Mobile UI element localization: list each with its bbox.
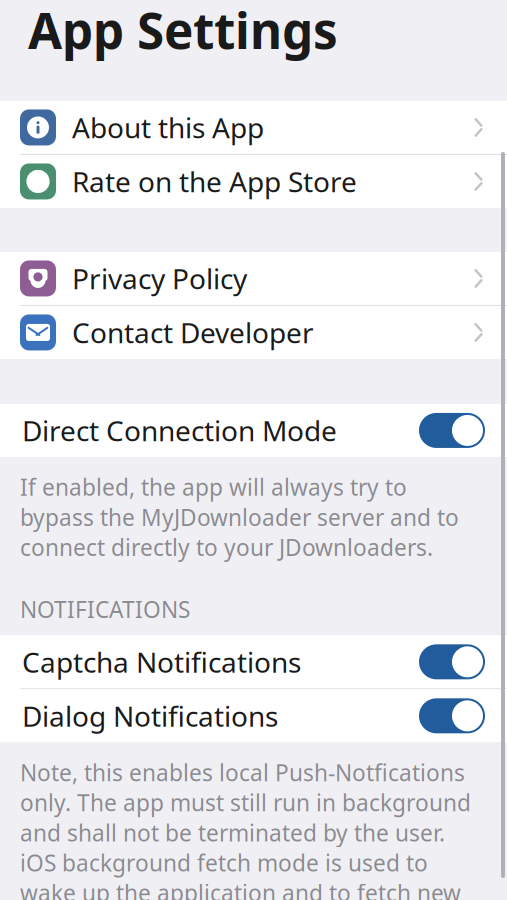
staticText: Rate on the App Store [72, 163, 357, 200]
staticText: Note, this enables local Push-Notficatio… [20, 757, 471, 900]
staticText: Captcha Notifications [22, 643, 301, 680]
staticText: Dialog Notifications [22, 697, 278, 734]
button[interactable]: About this App [0, 101, 507, 154]
staticText: App Settings [28, 0, 338, 63]
button[interactable]: Direct Connection Mode [0, 404, 507, 457]
staticText: Privacy Policy [72, 260, 247, 297]
staticText: About this App [72, 109, 264, 146]
button[interactable]: Contact Developer [0, 306, 507, 359]
staticText: Contact Developer [72, 314, 314, 351]
button[interactable]: Privacy Policy [0, 252, 507, 305]
button[interactable]: Dialog Notifications [0, 689, 507, 742]
staticText: NOTIFICATIONS [20, 594, 190, 624]
button[interactable]: Rate on the App Store [0, 155, 507, 208]
staticText: If enabled, the app will always try to b… [20, 472, 459, 562]
staticText: Direct Connection Mode [22, 412, 337, 449]
button[interactable]: Captcha Notifications [0, 635, 507, 688]
